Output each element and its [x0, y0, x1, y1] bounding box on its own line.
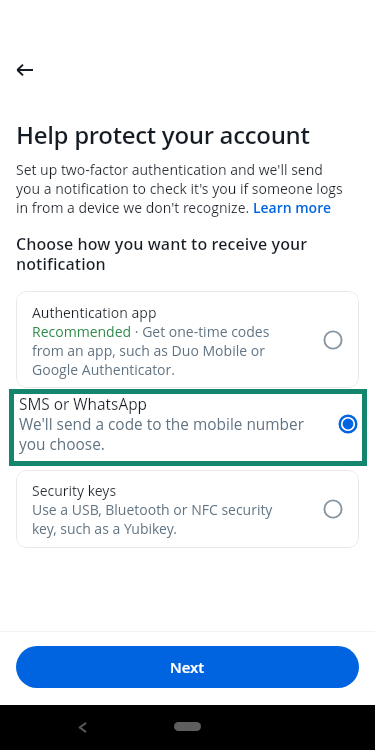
staticText: SMS or WhatsApp — [19, 393, 311, 414]
button[interactable]: SMS or WhatsApp — [14, 394, 362, 461]
staticText: Next — [170, 657, 205, 677]
staticText: We'll send a code to the mobile number y… — [19, 414, 311, 454]
button[interactable]: Authentication app — [16, 291, 359, 388]
staticText: Security keys — [32, 480, 294, 500]
staticText: Recommended · Get one-time codes from an… — [32, 322, 294, 379]
staticText: Authentication app — [32, 302, 294, 322]
button[interactable]: Home — [174, 722, 201, 731]
staticText: Help protect your account — [16, 120, 310, 151]
button[interactable]: Back — [5, 50, 45, 90]
staticText: Use a USB, Bluetooth or NFC security key… — [32, 500, 294, 538]
staticText: Set up two-factor authentication and we'… — [16, 160, 348, 217]
staticText: Choose how you want to receive your noti… — [16, 234, 348, 274]
button[interactable]: Security keys — [16, 470, 359, 548]
button[interactable]: Back — [66, 705, 106, 750]
button[interactable]: Next — [16, 646, 359, 688]
